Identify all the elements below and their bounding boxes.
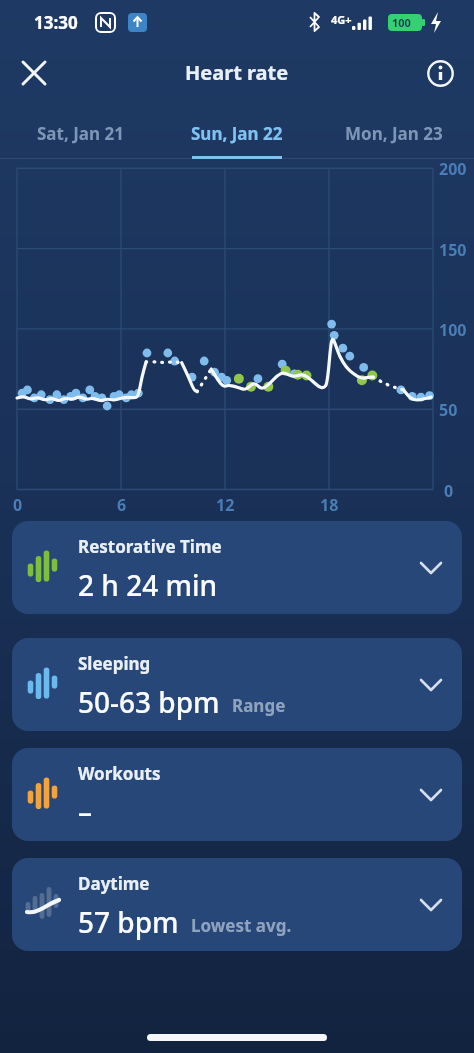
- button[interactable]: Workouts: [12, 748, 462, 841]
- button[interactable]: Mon, Jan 23: [324, 108, 464, 158]
- staticText: Sun, Jan 22: [191, 122, 283, 145]
- staticText: Restorative Time: [78, 535, 222, 558]
- button[interactable]: Sleeping: [12, 638, 462, 731]
- staticText: Daytime: [78, 872, 150, 895]
- staticText: 18: [320, 494, 339, 516]
- staticText: 13:30: [34, 11, 78, 34]
- staticText: 57 bpm: [78, 903, 179, 941]
- staticText: 100: [392, 15, 411, 30]
- staticText: 150: [439, 239, 467, 261]
- staticText: 6: [117, 494, 127, 516]
- staticText: Range: [232, 694, 286, 717]
- staticText: Workouts: [78, 762, 161, 785]
- staticText: 200: [439, 158, 467, 180]
- staticText: –: [78, 793, 93, 831]
- button[interactable]: Daytime: [12, 858, 462, 951]
- button[interactable]: [14, 53, 54, 93]
- staticText: 100: [439, 319, 467, 341]
- staticText: 4G+: [331, 12, 352, 27]
- staticText: Sat, Jan 21: [37, 122, 124, 145]
- staticText: Heart rate: [185, 59, 289, 86]
- staticText: 2 h 24 min: [78, 566, 218, 604]
- button[interactable]: Sat, Jan 21: [10, 108, 150, 158]
- staticText: Lowest avg.: [191, 914, 292, 937]
- staticText: 0: [444, 480, 454, 502]
- button[interactable]: [420, 53, 460, 93]
- staticText: 12: [216, 494, 235, 516]
- button[interactable]: Restorative Time: [12, 521, 462, 614]
- staticText: Mon, Jan 23: [345, 122, 443, 145]
- staticText: 50: [439, 399, 458, 421]
- staticText: Sleeping: [78, 652, 151, 675]
- staticText: 0: [13, 494, 23, 516]
- staticText: 50-63 bpm: [78, 683, 220, 721]
- button[interactable]: Sun, Jan 22: [167, 108, 307, 158]
